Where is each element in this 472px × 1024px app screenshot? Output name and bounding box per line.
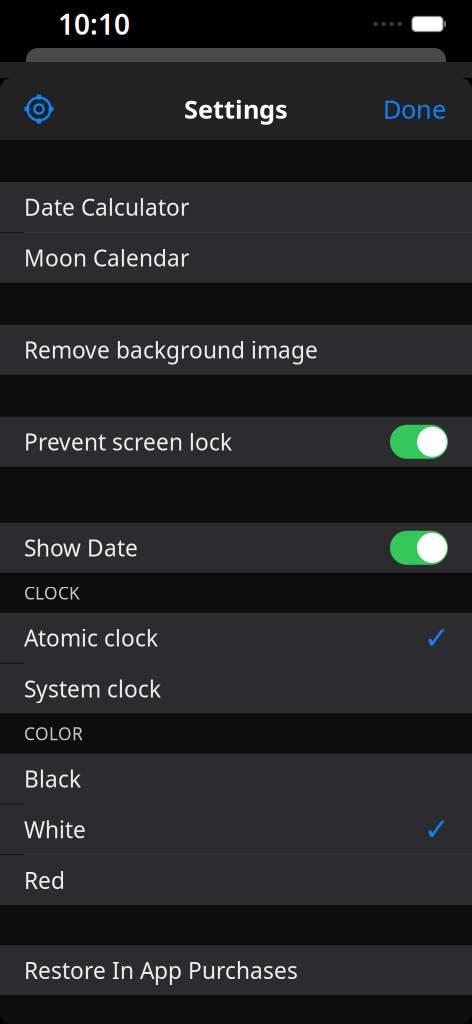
button[interactable]: Black xyxy=(0,754,472,804)
button[interactable]: Red xyxy=(0,855,472,905)
button[interactable]: Show Date xyxy=(0,523,472,573)
staticText: System clock xyxy=(24,673,161,704)
staticText: White xyxy=(24,814,86,844)
button[interactable]: Date Calculator xyxy=(0,182,472,232)
button[interactable]: Restore In App Purchases xyxy=(0,945,472,995)
staticText: COLOR xyxy=(24,722,83,745)
button[interactable]: System clock xyxy=(0,664,472,714)
button[interactable]: Prevent screen lock xyxy=(0,417,472,467)
staticText: ✓ xyxy=(424,812,450,847)
staticText: Black xyxy=(24,763,81,794)
button[interactable]: White xyxy=(0,804,472,854)
staticText: Show Date xyxy=(24,533,138,563)
button[interactable]: Moon Calendar xyxy=(0,233,472,283)
button[interactable]: Atomic clock xyxy=(0,613,472,663)
button[interactable]: Done xyxy=(369,80,460,138)
button[interactable]: Settings xyxy=(12,82,66,136)
staticText: Atomic clock xyxy=(24,623,158,653)
staticText: 10:10 xyxy=(58,5,130,43)
staticText: Remove background image xyxy=(24,335,318,365)
staticText: Date Calculator xyxy=(24,192,189,222)
staticText: Moon Calendar xyxy=(24,243,189,273)
button[interactable]: Remove background image xyxy=(0,325,472,375)
staticText: Restore In App Purchases xyxy=(24,955,298,985)
staticText: Settings xyxy=(184,92,288,126)
staticText: Done xyxy=(383,92,446,126)
staticText: ✓ xyxy=(424,620,450,655)
staticText: Red xyxy=(24,865,65,895)
staticText: CLOCK xyxy=(24,581,80,604)
staticText: Prevent screen lock xyxy=(24,427,232,457)
